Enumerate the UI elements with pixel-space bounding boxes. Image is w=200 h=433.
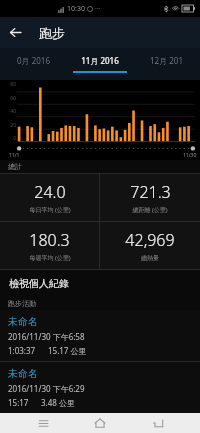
- staticText: 未命名: [8, 367, 38, 380]
- button[interactable]: Home: [85, 413, 115, 433]
- staticText: ···: [95, 4, 101, 14]
- button[interactable]: Back: [0, 17, 31, 48]
- staticText: 24.0: [34, 181, 66, 203]
- button[interactable]: Back: [143, 413, 173, 433]
- button[interactable]: 11月 2016: [66, 48, 133, 80]
- staticText: 每日平均 (公里): [29, 206, 71, 214]
- button[interactable]: 未命名: [0, 310, 200, 361]
- staticText: 1:03:37: [8, 345, 36, 356]
- staticText: 跑步: [39, 25, 65, 41]
- button[interactable]: 檢視個人紀錄: [0, 270, 200, 297]
- staticText: 10:30: [67, 4, 85, 14]
- staticText: 12月 201: [150, 55, 183, 66]
- button[interactable]: 未命名: [0, 362, 200, 413]
- button[interactable]: 180.3: [0, 222, 99, 269]
- staticText: 11月 2016: [81, 55, 119, 66]
- button[interactable]: 721.3: [100, 174, 200, 221]
- button[interactable]: 0月 2016: [0, 48, 66, 80]
- staticText: 總熱量: [141, 254, 159, 262]
- staticText: 11/30: [183, 152, 197, 159]
- staticText: 80: [10, 81, 16, 88]
- staticText: 11/1: [9, 152, 20, 159]
- staticText: 未命名: [8, 315, 38, 328]
- button[interactable]: 42,969: [100, 222, 200, 269]
- button[interactable]: 24.0: [0, 174, 99, 221]
- staticText: 60: [10, 95, 16, 102]
- staticText: 檢視個人紀錄: [9, 277, 69, 290]
- staticText: 20: [10, 122, 16, 129]
- staticText: 跑步活動: [8, 299, 36, 308]
- staticText: 180.3: [29, 229, 70, 251]
- button[interactable]: 12月 201: [133, 48, 200, 80]
- staticText: 每週平均 (公里): [29, 254, 71, 262]
- staticText: 15.17 公里: [48, 345, 87, 356]
- staticText: 15:17: [8, 397, 29, 408]
- staticText: 3.48 公里: [41, 397, 75, 408]
- staticText: 40: [10, 108, 16, 115]
- staticText: 42,969: [125, 229, 175, 251]
- button[interactable]: Recent apps: [28, 413, 58, 433]
- staticText: 0: [13, 135, 16, 142]
- staticText: 2016/11/30 下午6:58: [8, 331, 85, 342]
- staticText: 0月 2016: [17, 55, 50, 66]
- staticText: 721.3: [130, 181, 171, 203]
- staticText: 2016/11/30 下午6:29: [8, 383, 85, 394]
- staticText: 總距離 (公里): [132, 206, 168, 214]
- staticText: 總計: [8, 162, 22, 171]
